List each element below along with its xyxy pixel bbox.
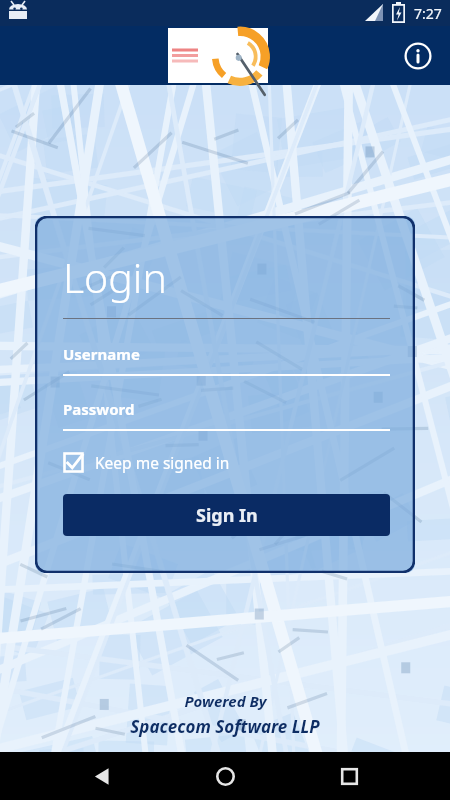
button[interactable]: Sign In [63, 494, 390, 536]
button[interactable]: Home [203, 754, 247, 798]
button[interactable]: Keep me signed in [63, 450, 230, 475]
button[interactable]: Info [398, 36, 438, 76]
staticText: Sign In [196, 503, 258, 528]
staticText: Password [63, 399, 135, 419]
staticText: Keep me signed in [95, 452, 230, 473]
button[interactable]: Recent apps [327, 754, 371, 798]
staticText: Login [63, 249, 167, 305]
staticText: Spacecom Software LLP [130, 715, 320, 738]
button[interactable]: Back [80, 754, 124, 798]
staticText: Powered By [184, 691, 267, 711]
staticText: 7:27 [414, 4, 442, 23]
staticText: Username [63, 344, 140, 364]
